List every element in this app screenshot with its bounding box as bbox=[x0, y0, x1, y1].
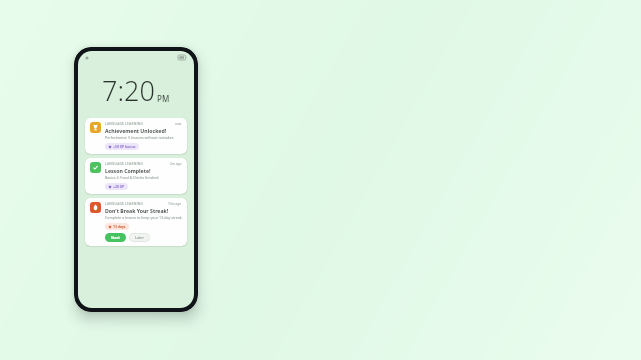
staticText: +20 XP bbox=[113, 184, 125, 189]
staticText: 7:20 bbox=[102, 72, 155, 109]
button[interactable]: Start bbox=[105, 233, 126, 242]
staticText: Perfectionist: 5 lessons without mistake… bbox=[105, 135, 174, 140]
button[interactable]: LANGUAGE LEARNING bbox=[85, 118, 187, 154]
staticText: Lesson Complete! bbox=[105, 167, 151, 174]
staticText: +50 XP bonus bbox=[113, 144, 136, 149]
staticText: LANGUAGE LEARNING bbox=[105, 162, 144, 166]
staticText: Don't Break Your Streak! bbox=[105, 207, 169, 214]
staticText: 2m ago bbox=[170, 162, 182, 166]
staticText: now bbox=[175, 122, 182, 126]
button[interactable]: Later bbox=[129, 233, 150, 242]
staticText: 10m ago bbox=[168, 202, 182, 206]
staticText: Achievement Unlocked! bbox=[105, 127, 167, 134]
staticText: Basics 2: Food & Drinks finished bbox=[105, 175, 159, 180]
button[interactable]: LANGUAGE LEARNING bbox=[85, 158, 187, 194]
staticText: Start bbox=[111, 235, 120, 240]
staticText: 13 days bbox=[113, 224, 126, 229]
staticText: Complete a lesson to keep your 13-day st… bbox=[105, 215, 182, 220]
staticText: PM bbox=[157, 93, 170, 104]
button[interactable]: LANGUAGE LEARNING bbox=[85, 198, 187, 246]
staticText: LANGUAGE LEARNING bbox=[105, 202, 144, 206]
staticText: Later bbox=[135, 235, 144, 240]
staticText: LANGUAGE LEARNING bbox=[105, 122, 144, 126]
